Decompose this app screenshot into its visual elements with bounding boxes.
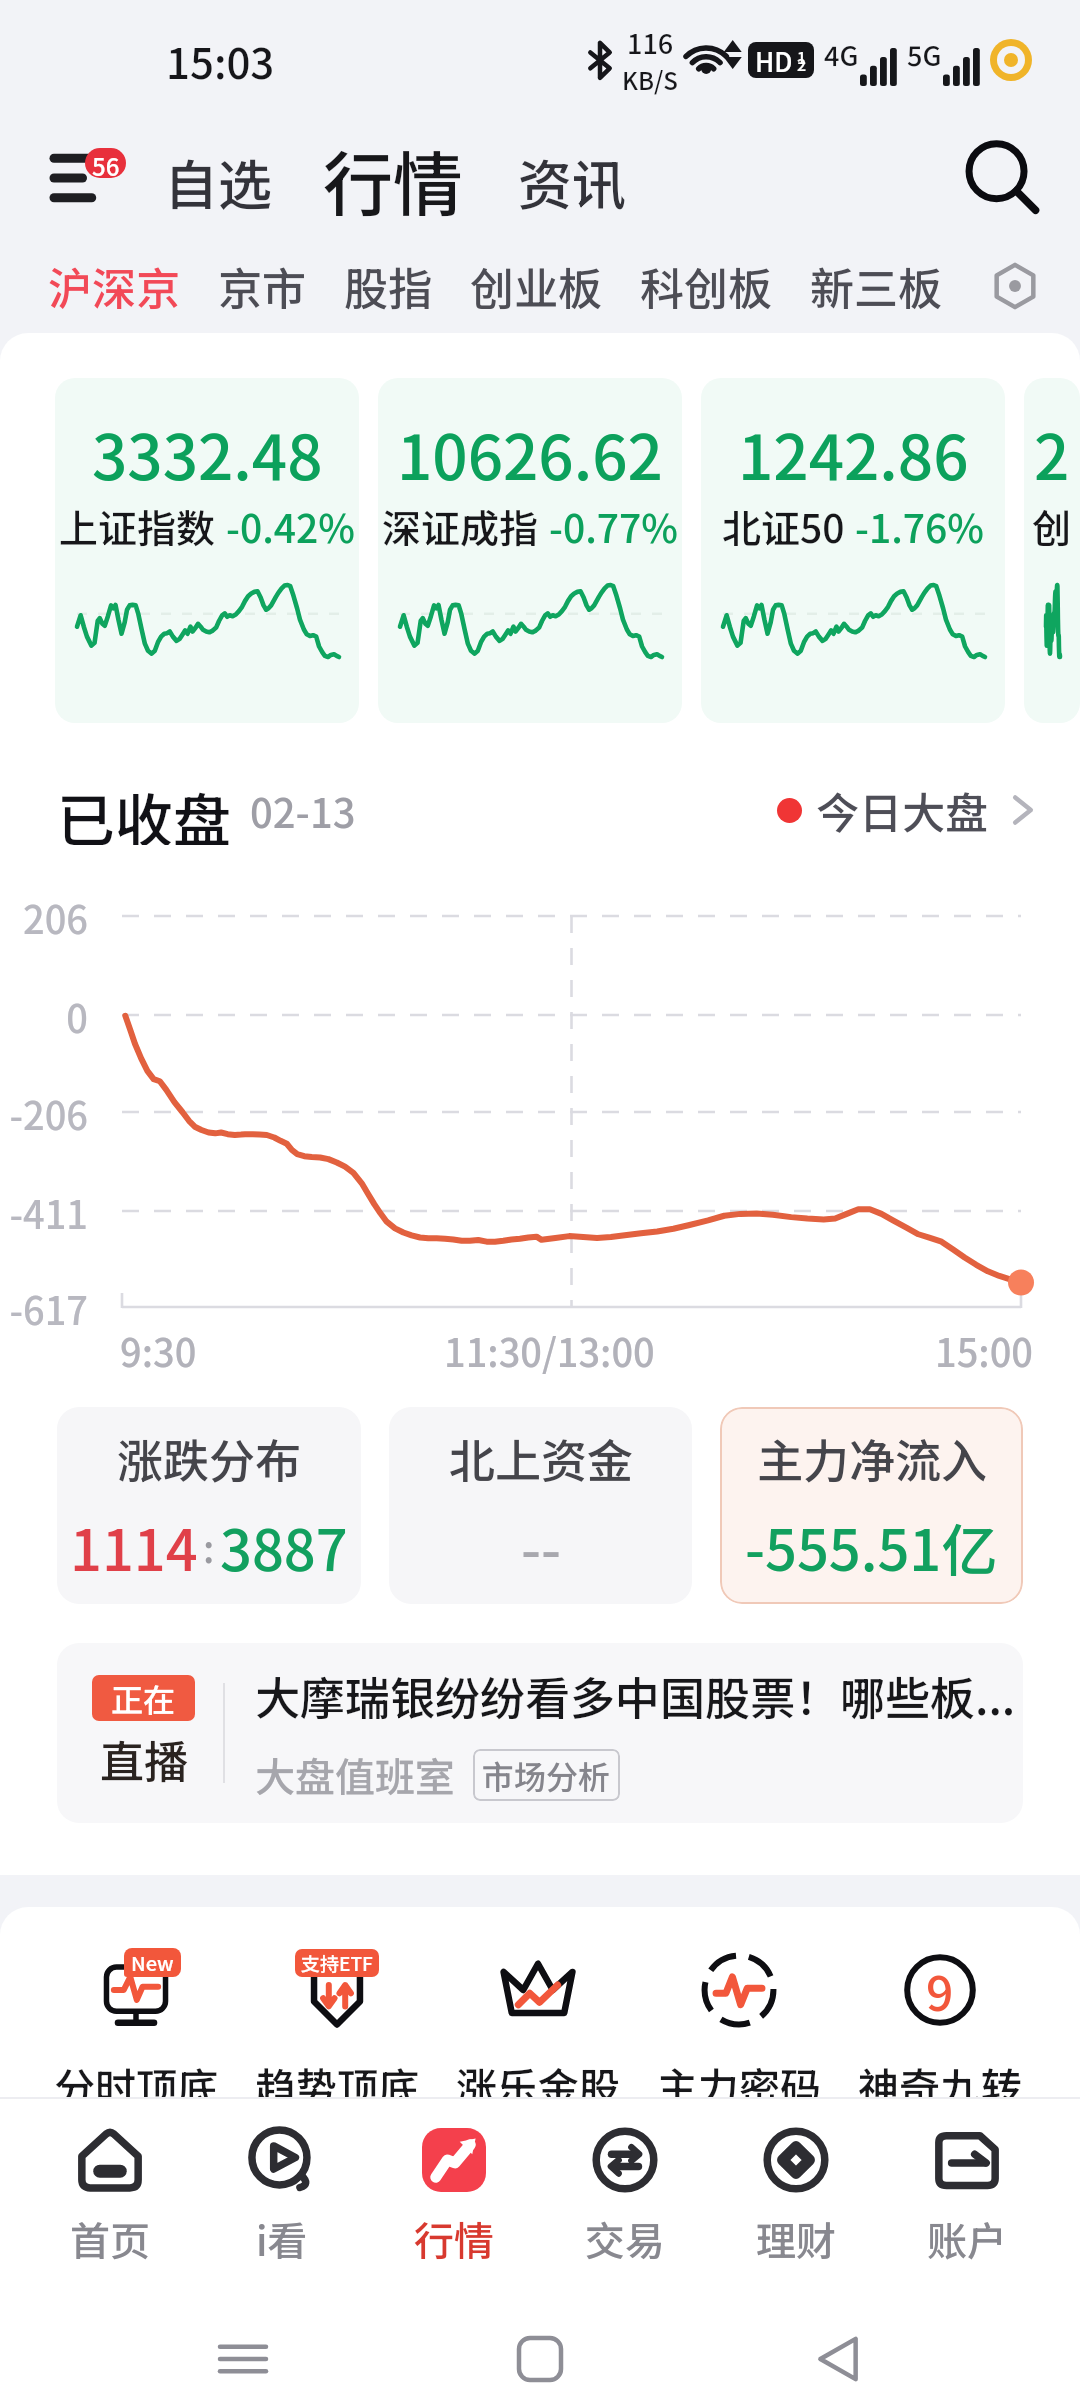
staticText: -- <box>521 1506 561 1587</box>
staticText: -617 <box>9 1281 88 1336</box>
button[interactable]: 京市 <box>216 254 308 318</box>
staticText: 创 <box>1032 498 1072 554</box>
button[interactable]: Recents <box>188 2305 298 2400</box>
staticText: -411 <box>9 1185 88 1240</box>
staticText: 4G <box>824 35 859 74</box>
staticText: 自选 <box>164 142 272 220</box>
staticText: KB/S <box>622 62 678 97</box>
staticText: 直播 <box>100 1727 188 1791</box>
button[interactable]: 自选 <box>164 142 272 220</box>
button[interactable]: 创业板 <box>468 254 604 318</box>
staticText: 206 <box>23 890 88 945</box>
staticText: 主力密码 <box>657 2055 821 2114</box>
staticText: 9:30 <box>120 1323 197 1378</box>
staticText: 11:30/13:00 <box>444 1323 655 1378</box>
staticText: 15:00 <box>935 1323 1033 1378</box>
staticText: -555.51亿 <box>745 1506 998 1587</box>
button[interactable]: 10626.62 <box>378 378 682 723</box>
button[interactable]: 正在 <box>57 1643 1023 1823</box>
staticText: -0.42% <box>226 498 355 554</box>
staticText: 京市 <box>218 254 306 318</box>
button[interactable]: 涨乐金股 <box>437 1949 638 2114</box>
button[interactable]: Search <box>955 132 1049 226</box>
button[interactable]: Back <box>783 2305 893 2400</box>
button[interactable]: 股指 <box>342 254 434 318</box>
button[interactable]: 支持ETF <box>236 1949 437 2114</box>
staticText: 2 <box>797 52 807 75</box>
staticText: 涨跌分布 <box>117 1425 301 1492</box>
button[interactable]: Menu <box>40 133 136 225</box>
staticText: 北证50 <box>722 498 845 554</box>
staticText: 股指 <box>344 254 432 318</box>
button[interactable]: 沪深京 <box>46 254 182 318</box>
button[interactable]: 行情 <box>368 2099 539 2293</box>
staticText: 行情 <box>323 129 463 230</box>
staticText: 分时顶底 <box>54 2055 218 2114</box>
button[interactable]: Home <box>485 2305 595 2400</box>
staticText: New <box>131 1948 174 1977</box>
button[interactable]: New <box>36 1949 236 2114</box>
staticText: 2 <box>1034 408 1070 498</box>
staticText: 116 <box>627 23 674 62</box>
staticText: -1.76% <box>855 498 984 554</box>
button[interactable]: 北上资金 <box>389 1407 692 1604</box>
staticText: 账户 <box>927 2210 1007 2268</box>
button[interactable]: 账户 <box>881 2099 1052 2293</box>
staticText: 1242.86 <box>738 408 969 498</box>
staticText: 已收盘 <box>57 775 232 845</box>
staticText: 02-13 <box>250 782 356 840</box>
staticText: 正在 <box>111 1675 176 1721</box>
staticText: 10626.62 <box>397 408 663 498</box>
staticText: 大盘值班室 <box>255 1746 455 1804</box>
button[interactable]: 资讯 <box>518 142 626 220</box>
button[interactable]: 新三板 <box>808 254 944 318</box>
button[interactable]: 科创板 <box>638 254 774 318</box>
staticText: 北上资金 <box>449 1425 633 1492</box>
staticText: 深证成指 <box>382 498 539 554</box>
button[interactable]: 1242.86 <box>701 378 1005 723</box>
staticText: 科创板 <box>640 254 772 318</box>
button[interactable]: 首页 <box>24 2099 196 2293</box>
button[interactable]: 涨跌分布 <box>57 1407 361 1604</box>
staticText: 9 <box>926 1955 954 2025</box>
staticText: i看 <box>256 2210 308 2268</box>
staticText: 0 <box>66 989 88 1044</box>
staticText: 56 <box>92 148 120 178</box>
button[interactable]: 3332.48 <box>55 378 359 723</box>
staticText: 涨乐金股 <box>456 2055 620 2114</box>
button[interactable]: 交易 <box>539 2099 710 2293</box>
staticText: 大摩瑞银纷纷看多中国股票！哪些板... <box>255 1663 1016 1728</box>
staticText: : <box>203 1519 215 1574</box>
button[interactable]: 行情 <box>323 129 463 230</box>
button[interactable]: 主力净流入 <box>720 1407 1023 1604</box>
staticText: 神奇九转 <box>858 2055 1022 2114</box>
staticText: 5G <box>907 35 942 74</box>
staticText: 创业板 <box>470 254 602 318</box>
staticText: 市场分析 <box>482 1752 611 1798</box>
staticText: 今日大盘 <box>816 779 988 841</box>
staticText: 1 <box>797 45 807 68</box>
staticText: 行情 <box>414 2210 494 2268</box>
button[interactable]: 9 <box>839 1949 1040 2114</box>
staticText: 交易 <box>585 2210 665 2268</box>
button[interactable]: 2 <box>1024 378 1080 723</box>
staticText: 1114 <box>70 1506 198 1587</box>
staticText: 新三板 <box>810 254 942 318</box>
button[interactable]: Settings <box>980 251 1050 321</box>
staticText: 趋势顶底 <box>255 2055 419 2114</box>
staticText: 3887 <box>220 1506 348 1587</box>
button[interactable]: 今日大盘 <box>777 779 1036 841</box>
staticText: 资讯 <box>518 142 626 220</box>
button[interactable]: 主力密码 <box>638 1949 839 2114</box>
staticText: 15:03 <box>166 30 275 91</box>
staticText: 支持ETF <box>301 1949 373 1977</box>
staticText: 主力净流入 <box>757 1425 987 1492</box>
staticText: 上证指数 <box>59 498 216 554</box>
staticText: HD <box>755 42 793 78</box>
staticText: 理财 <box>756 2210 836 2268</box>
staticText: 3332.48 <box>92 408 323 498</box>
button[interactable]: 理财 <box>710 2099 881 2293</box>
button[interactable]: i看 <box>196 2099 368 2293</box>
staticText: 沪深京 <box>48 254 180 318</box>
staticText: -206 <box>9 1086 88 1141</box>
